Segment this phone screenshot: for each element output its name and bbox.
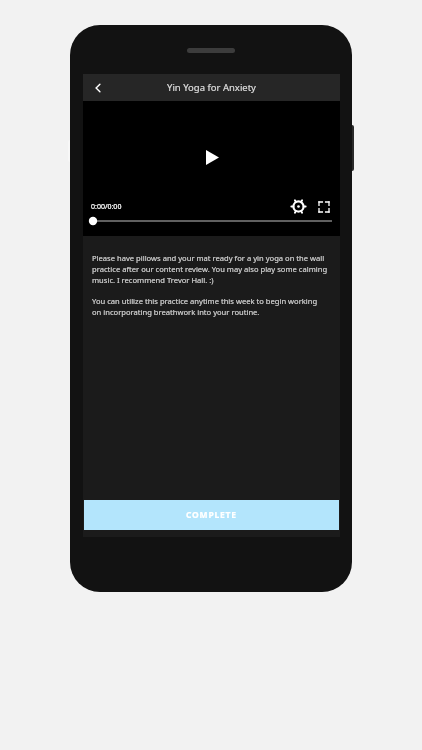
staticText: Please have pillows and your mat ready f…	[92, 253, 328, 285]
button[interactable]: Settings	[290, 198, 307, 215]
button[interactable]: Seek bar	[83, 214, 340, 228]
button[interactable]: COMPLETE	[84, 500, 339, 530]
button[interactable]: Fullscreen	[315, 198, 332, 215]
button[interactable]: Back	[83, 74, 113, 101]
staticText: You can utilize this practice anytime th…	[92, 296, 328, 317]
staticText: 0:00/0:00	[91, 202, 122, 212]
staticText: COMPLETE	[186, 509, 237, 521]
staticText: Yin Yoga for Anxiety	[167, 81, 256, 94]
button[interactable]: Play	[197, 142, 227, 172]
